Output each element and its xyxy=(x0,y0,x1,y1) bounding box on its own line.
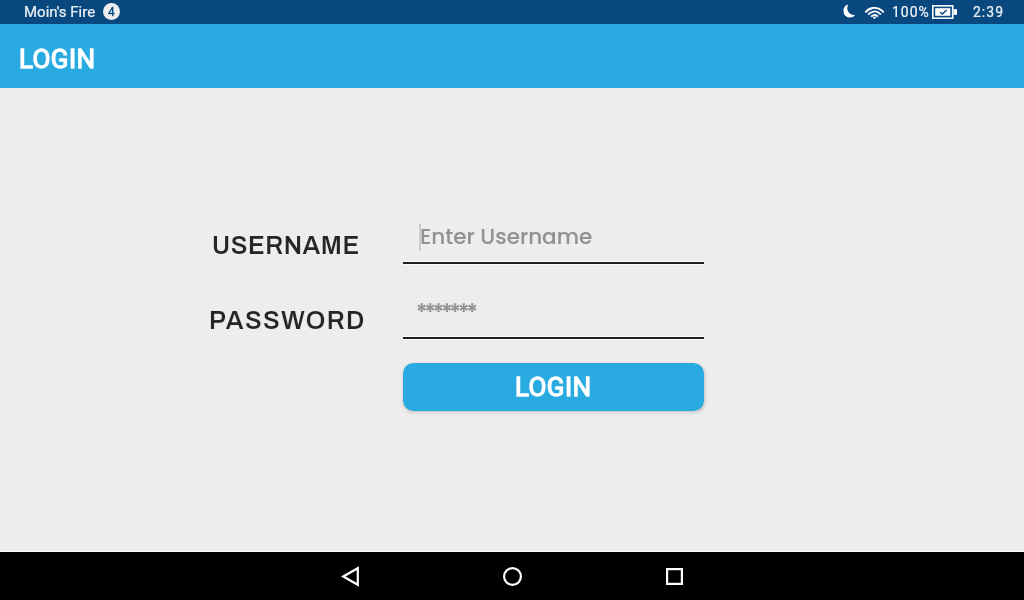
staticText: 4 xyxy=(108,5,115,19)
staticText: 2:39 xyxy=(973,4,1004,20)
staticText: PASSWORD xyxy=(209,307,366,334)
button[interactable]: ******* xyxy=(403,297,704,340)
staticText: 100% xyxy=(892,4,930,20)
staticText: ******* xyxy=(416,297,475,328)
staticText: LOGIN xyxy=(515,372,592,402)
button[interactable]: LOGIN xyxy=(403,363,704,411)
staticText: LOGIN xyxy=(19,44,96,74)
staticText: USERNAME xyxy=(212,232,360,259)
button[interactable]: Home xyxy=(488,552,536,600)
button[interactable]: Enter Username xyxy=(403,222,704,265)
staticText: Enter Username xyxy=(420,221,593,251)
staticText: Moin's Fire xyxy=(24,3,96,21)
button[interactable]: Recents xyxy=(650,552,698,600)
button[interactable]: Back xyxy=(326,552,374,600)
